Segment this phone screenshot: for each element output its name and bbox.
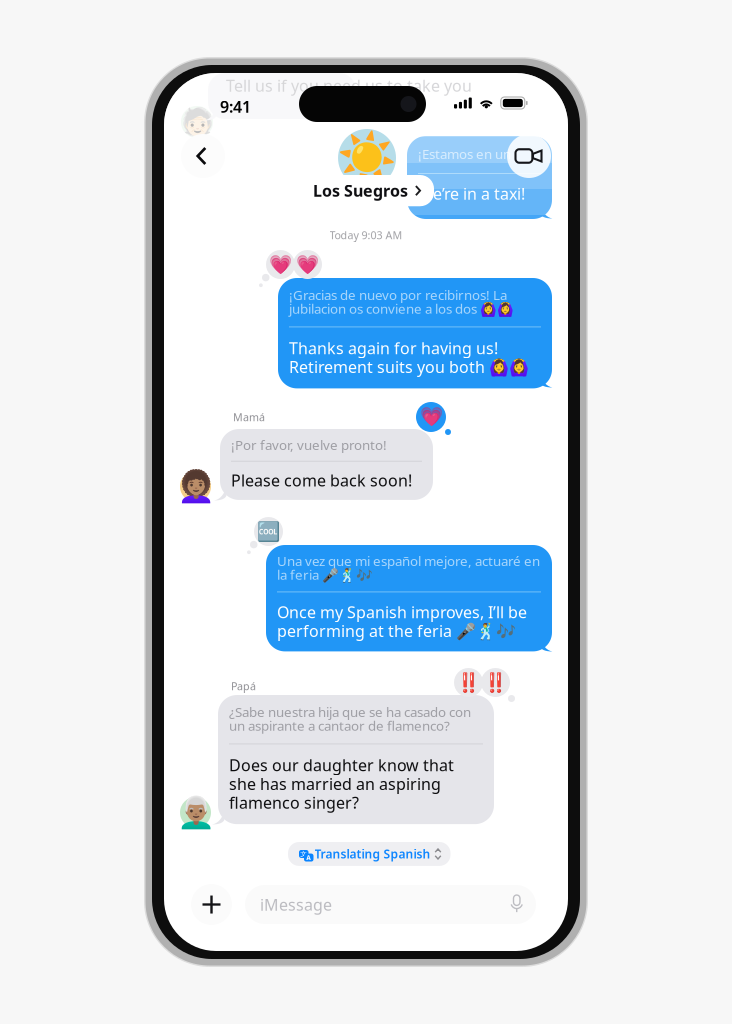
staticText: 💗	[296, 254, 319, 275]
button[interactable]: iMessage	[245, 885, 536, 924]
staticText: 👨🏽‍🦳	[176, 795, 214, 830]
staticText: 🆒	[257, 521, 280, 542]
staticText: 💗	[269, 254, 292, 275]
staticText: 9:41	[220, 96, 251, 117]
button[interactable]: Add attachment	[191, 884, 232, 925]
staticText: Una vez que mi español mejore, actuaré e…	[277, 552, 540, 583]
staticText: Tell us if you need us to take you	[226, 75, 472, 96]
button[interactable]: FaceTime video call	[507, 134, 551, 178]
staticText: ¡Gracias de nuevo por recibirnos! La jub…	[289, 286, 514, 317]
button[interactable]: Los Suegros	[300, 175, 434, 206]
staticText: A	[306, 853, 311, 862]
staticText: ¡Por favor, vuelve pronto!	[231, 436, 387, 454]
staticText: Today 9:03 AM	[329, 228, 402, 242]
staticText: 👩🏽‍🦱	[176, 469, 214, 504]
staticText: Please come back soon!	[231, 470, 412, 491]
staticText: 🧓🏻	[180, 107, 213, 137]
staticText: Thanks again for having us! Retirement s…	[289, 337, 529, 377]
staticText: ‼️	[457, 672, 480, 693]
staticText: Once my Spanish improves, I’ll be perfor…	[277, 601, 527, 641]
staticText: iMessage	[260, 894, 332, 915]
staticText: 💗	[419, 406, 442, 428]
staticText: ¿Sabe nuestra hija que se ha casado con …	[229, 703, 471, 734]
staticText: ¡Estamos en un	[418, 145, 511, 163]
staticText: Los Suegros	[313, 180, 408, 201]
staticText: Mamá	[233, 410, 265, 424]
staticText: ☀️	[337, 131, 397, 185]
staticText: Does our daughter know that she has marr…	[229, 754, 454, 813]
button[interactable]: Back	[181, 134, 225, 178]
staticText: We’re in a taxi!	[418, 183, 525, 204]
button[interactable]: 文	[288, 842, 450, 866]
staticText: Translating Spanish	[314, 846, 430, 862]
staticText: ‼️	[484, 672, 507, 693]
staticText: 文	[300, 850, 307, 858]
staticText: Papá	[231, 679, 256, 693]
